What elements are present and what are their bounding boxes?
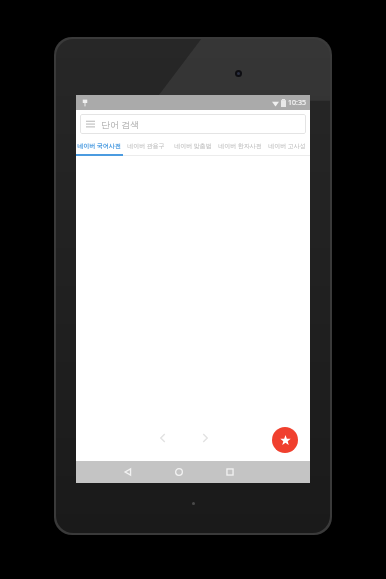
button[interactable]: Next page — [196, 429, 214, 447]
staticText: 10:35 — [288, 98, 306, 108]
staticText: 단어 검색 — [101, 118, 140, 130]
button[interactable]: 네이버 맞춤법 — [169, 138, 216, 154]
button[interactable]: 네이버 고사성 — [263, 138, 310, 154]
button[interactable]: 네이버 국어사전 — [76, 138, 122, 154]
button[interactable]: Home — [168, 461, 190, 483]
button[interactable]: Previous page — [154, 429, 172, 447]
staticText: 네이버 고사성 — [268, 142, 306, 150]
button[interactable]: 네이버 관용구 — [122, 138, 169, 154]
button[interactable]: Menu — [80, 114, 306, 134]
staticText: 네이버 맞춤법 — [174, 142, 212, 150]
button[interactable]: 네이버 한자사전 — [216, 138, 263, 154]
staticText: 네이버 국어사전 — [77, 142, 121, 150]
button[interactable]: Favorite — [272, 427, 298, 453]
staticText: 네이버 한자사전 — [218, 142, 262, 150]
other: Menu — [86, 120, 95, 129]
button[interactable]: Recent apps — [219, 461, 241, 483]
button[interactable]: Back — [117, 461, 139, 483]
staticText: 네이버 관용구 — [127, 142, 165, 150]
